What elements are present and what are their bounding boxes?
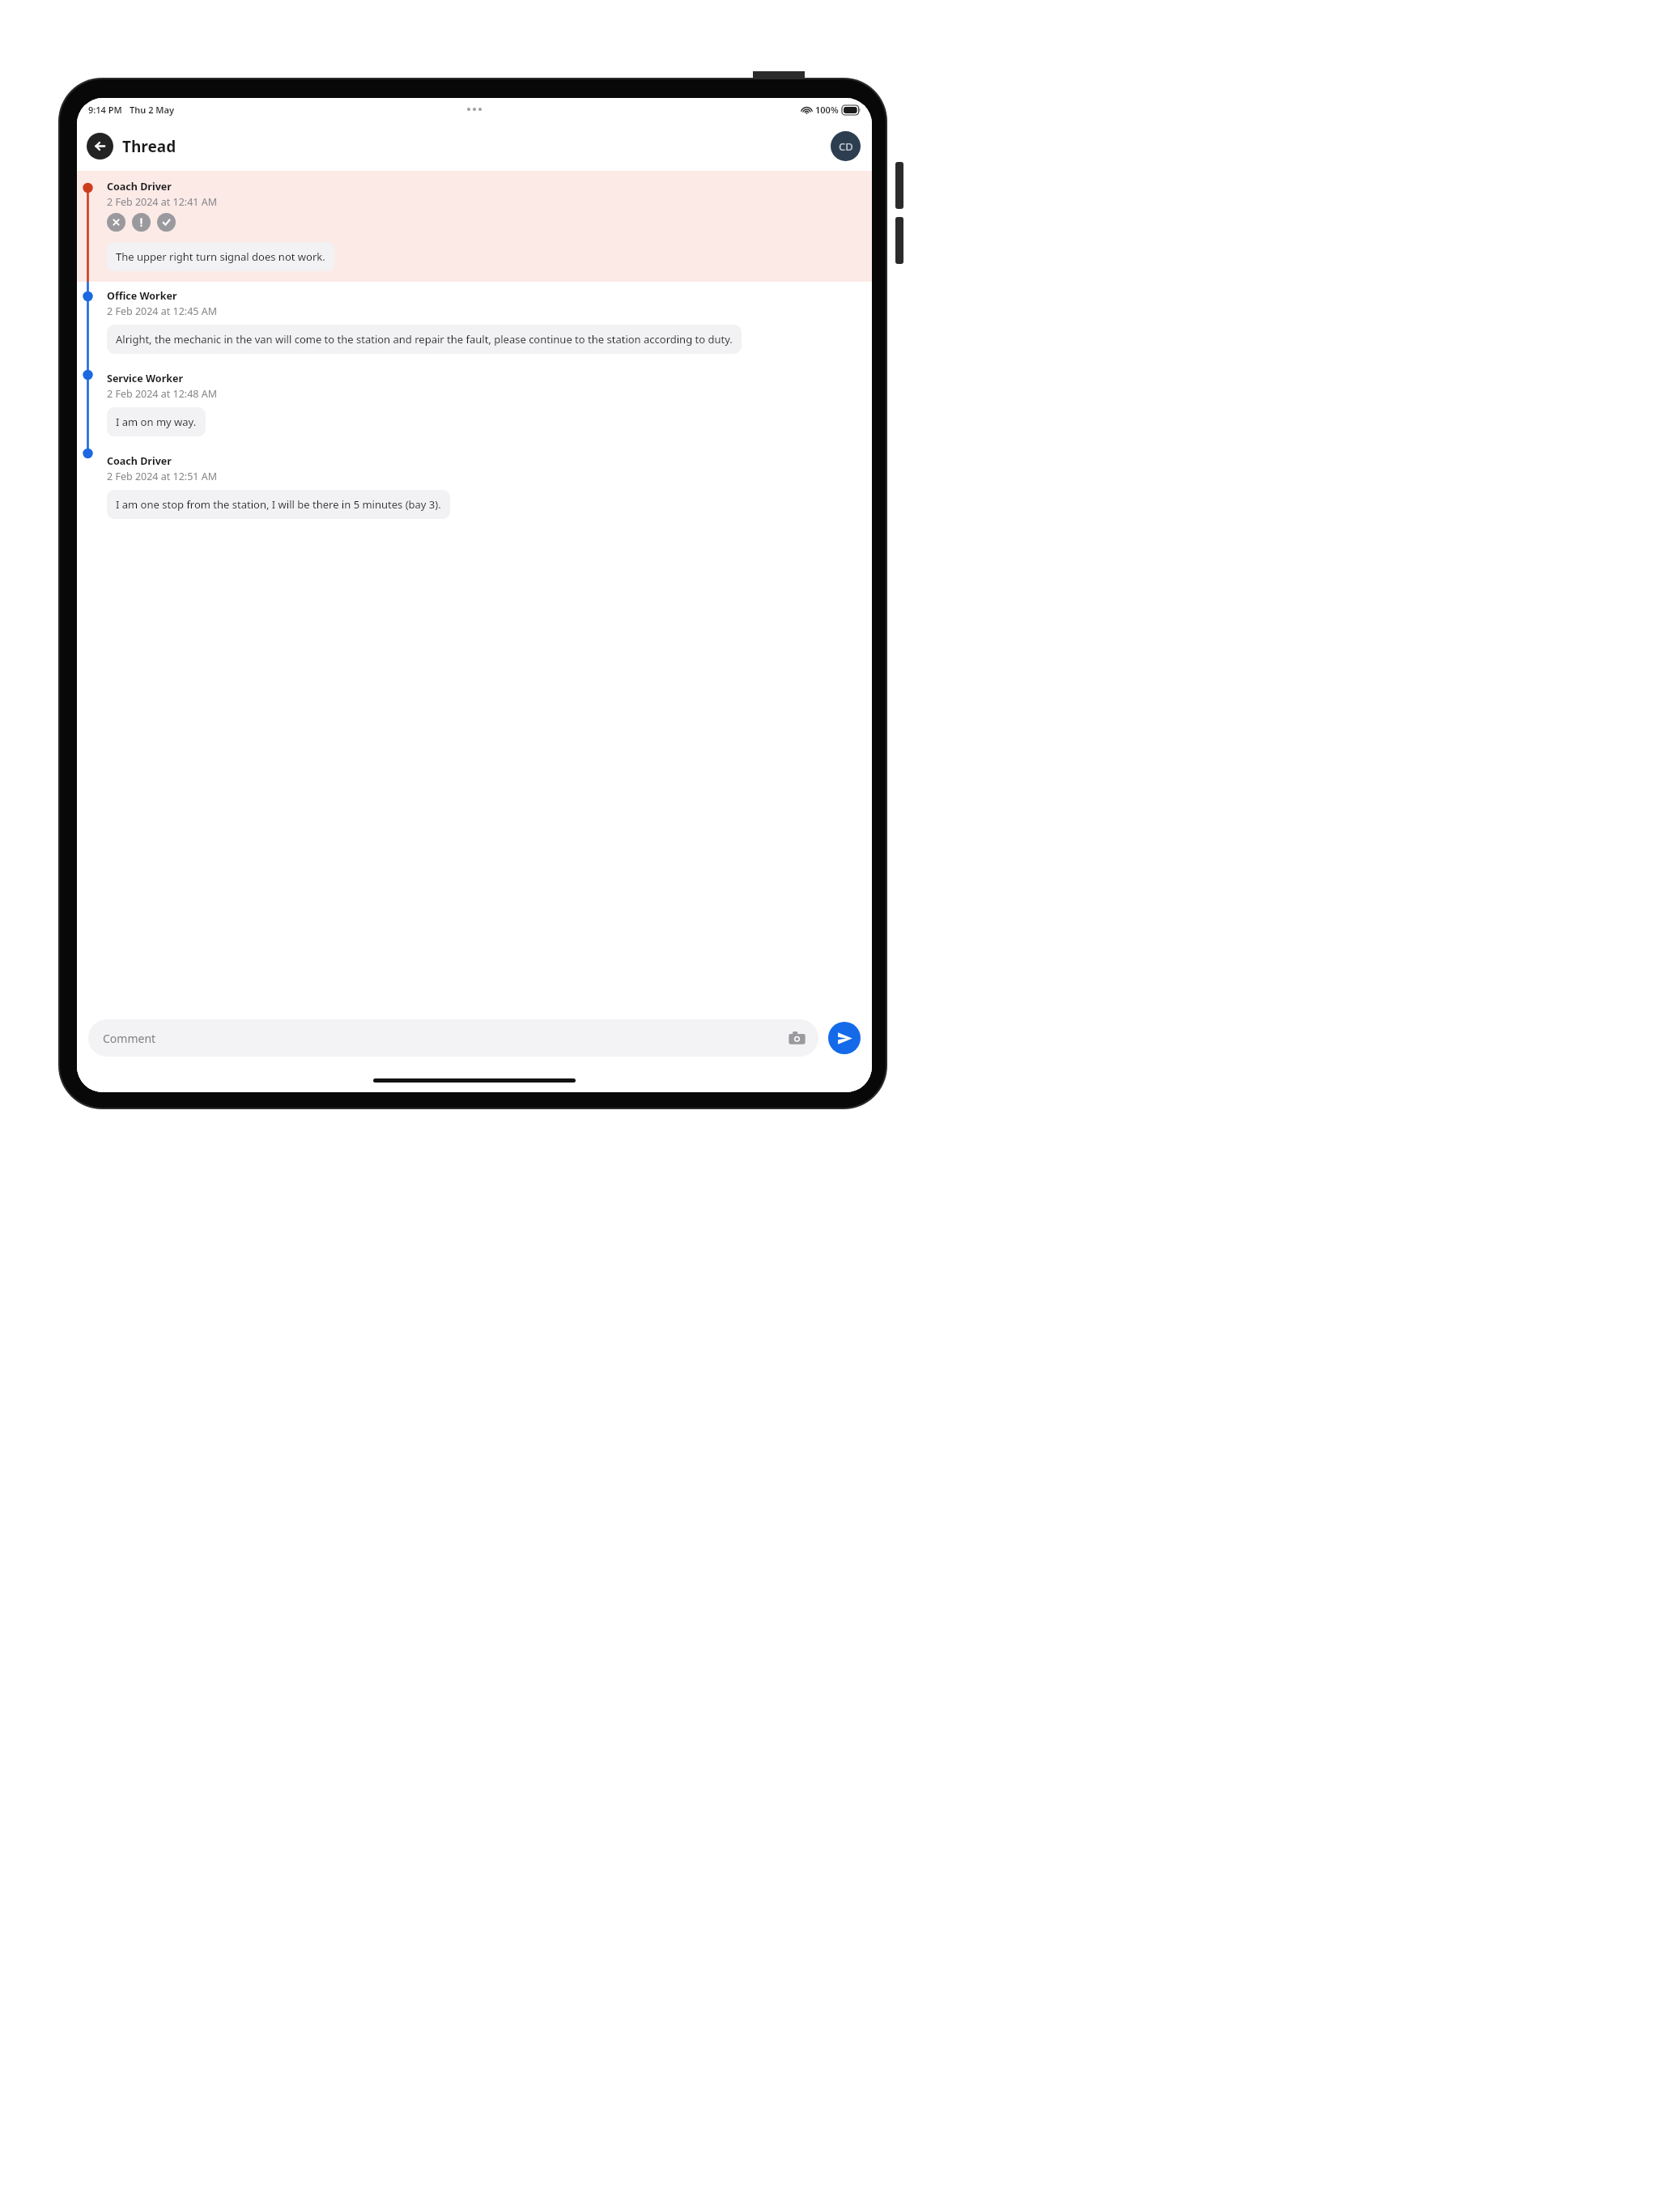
staticText: Coach Driver <box>107 180 172 194</box>
button[interactable]: Service Worker <box>107 372 872 401</box>
button[interactable]: I am on my way. <box>107 407 206 436</box>
button[interactable]: Office Worker <box>107 289 872 318</box>
staticText: 2 Feb 2024 at 12:48 AM <box>107 387 218 401</box>
staticText: 9:14 PM <box>88 104 122 116</box>
staticText: The upper right turn signal does not wor… <box>116 249 325 264</box>
staticText: 100% <box>815 104 839 116</box>
staticText: Coach Driver <box>107 454 172 468</box>
button[interactable]: Send <box>828 1022 861 1054</box>
staticText: Office Worker <box>107 289 177 303</box>
staticText: 2 Feb 2024 at 12:51 AM <box>107 470 218 483</box>
button[interactable]: Coach Driver <box>107 180 872 209</box>
staticText: CD <box>839 139 853 154</box>
button[interactable]: Back <box>87 133 113 160</box>
staticText: I am one stop from the station, I will b… <box>116 497 441 512</box>
button[interactable]: Accept <box>157 213 176 232</box>
button[interactable]: I am one stop from the station, I will b… <box>107 490 450 519</box>
staticText: Alright, the mechanic in the van will co… <box>116 332 733 347</box>
staticText: Thu 2 May <box>130 104 174 116</box>
staticText: Comment <box>103 1031 156 1046</box>
staticText: Service Worker <box>107 372 184 385</box>
button[interactable]: Comment <box>88 1019 818 1057</box>
staticText: I am on my way. <box>116 415 197 429</box>
button[interactable]: Attach photo <box>786 1027 807 1049</box>
staticText: Thread <box>122 136 176 157</box>
button[interactable]: CD <box>831 131 861 161</box>
button[interactable]: The upper right turn signal does not wor… <box>107 242 334 271</box>
button[interactable]: Coach Driver <box>107 454 872 483</box>
staticText: 2 Feb 2024 at 12:45 AM <box>107 304 218 318</box>
button[interactable]: Alright, the mechanic in the van will co… <box>107 325 742 354</box>
button[interactable]: Reject <box>107 213 125 232</box>
button[interactable]: Flag <box>132 213 151 232</box>
staticText: 2 Feb 2024 at 12:41 AM <box>107 195 218 209</box>
